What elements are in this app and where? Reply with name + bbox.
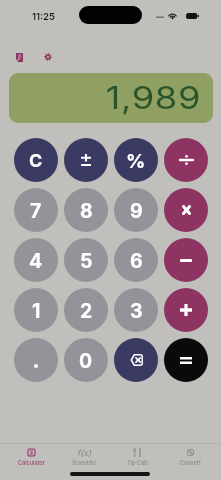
button[interactable]: Convert bbox=[164, 444, 217, 466]
button[interactable]: C bbox=[14, 138, 58, 182]
staticText: 2 bbox=[80, 299, 93, 323]
button[interactable]: Calculator bbox=[4, 444, 58, 466]
button[interactable]: 5 bbox=[64, 238, 108, 282]
staticText: 6 bbox=[130, 249, 143, 273]
button[interactable] bbox=[164, 288, 208, 332]
staticText: 0 bbox=[79, 349, 93, 373]
button[interactable]: 4 bbox=[14, 238, 58, 282]
staticText: 11:25 bbox=[32, 11, 55, 22]
button[interactable]: Backspace bbox=[114, 338, 158, 382]
staticText: 1,989 bbox=[105, 79, 201, 116]
button[interactable]: 0 bbox=[64, 338, 108, 382]
staticText: f(x) bbox=[77, 448, 92, 457]
staticText: Calculator bbox=[18, 460, 45, 466]
staticText: 3 bbox=[130, 299, 143, 323]
button[interactable]: Tip Calc bbox=[111, 444, 164, 466]
button[interactable] bbox=[164, 338, 208, 382]
staticText: 1 bbox=[32, 299, 41, 323]
staticText: Tip Calc bbox=[127, 460, 149, 466]
staticText: 8 bbox=[80, 199, 93, 223]
staticText: 9 bbox=[130, 199, 143, 223]
button[interactable]: 7 bbox=[14, 188, 58, 232]
button[interactable]: 2 bbox=[64, 288, 108, 332]
staticText: 4 bbox=[29, 249, 43, 273]
button[interactable]: 1 bbox=[14, 288, 58, 332]
staticText: Convert bbox=[180, 460, 201, 466]
button[interactable]: 9 bbox=[114, 188, 158, 232]
button[interactable]: f(x) bbox=[58, 444, 111, 466]
button[interactable]: 6 bbox=[114, 238, 158, 282]
staticText: 5 bbox=[80, 249, 93, 273]
button[interactable] bbox=[164, 238, 208, 282]
staticText: Scientific bbox=[72, 460, 97, 466]
button[interactable]: % bbox=[114, 138, 158, 182]
button[interactable]: Settings bbox=[36, 45, 60, 69]
button[interactable]: 8 bbox=[64, 188, 108, 232]
button[interactable] bbox=[164, 188, 208, 232]
button[interactable] bbox=[164, 138, 208, 182]
button[interactable] bbox=[14, 338, 58, 382]
button[interactable]: History bbox=[7, 45, 31, 69]
staticText: % bbox=[126, 150, 146, 173]
staticText: 7 bbox=[30, 199, 42, 223]
button[interactable] bbox=[64, 138, 108, 182]
button[interactable]: 3 bbox=[114, 288, 158, 332]
staticText: C bbox=[29, 150, 43, 172]
